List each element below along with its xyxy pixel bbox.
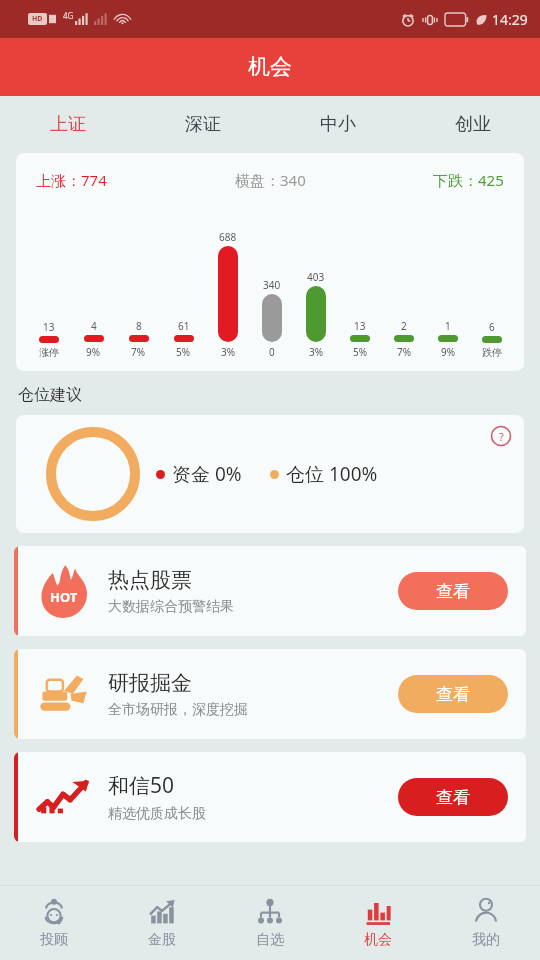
staticText: 9% (441, 345, 456, 359)
staticText: 和信50 (108, 771, 175, 800)
staticText: 5% (176, 345, 191, 359)
button[interactable]: 帮助 (490, 425, 512, 447)
staticText: 涨停 (39, 346, 59, 359)
staticText: 仓位建议 (18, 385, 82, 405)
staticText: 机会 (364, 931, 392, 949)
button[interactable]: 投顾 (0, 886, 108, 960)
staticText: 金股 (148, 931, 176, 949)
staticText: 340 (263, 278, 281, 292)
button[interactable]: 查看 (398, 572, 508, 610)
staticText: 8 (136, 319, 142, 333)
staticText: 我的 (472, 931, 500, 949)
button[interactable]: 上涨：774 (16, 153, 524, 371)
button[interactable]: 深证 (135, 96, 270, 153)
staticText: 下跌：425 (433, 170, 504, 190)
staticText: 上涨：774 (36, 170, 107, 190)
button[interactable]: 上证 (0, 96, 135, 153)
staticText: 资金 0% (172, 461, 242, 487)
staticText: 4 (91, 319, 97, 333)
staticText: 14:29 (492, 10, 528, 29)
staticText: 中小 (320, 113, 356, 136)
staticText: 机会 (248, 53, 292, 81)
staticText: 查看 (436, 581, 470, 602)
staticText: 精选优质成长股 (108, 805, 206, 823)
staticText: ? (499, 429, 504, 444)
staticText: 跌停 (482, 346, 502, 359)
staticText: 横盘：340 (235, 170, 306, 190)
staticText: 上证 (50, 113, 86, 136)
staticText: 热点股票 (108, 567, 192, 593)
staticText: 13 (354, 319, 366, 333)
staticText: 3% (309, 345, 324, 359)
staticText: 仓位 100% (286, 461, 378, 487)
button[interactable]: 自选 (216, 886, 324, 960)
button[interactable]: 机会 (324, 886, 432, 960)
button[interactable]: 和信50 (14, 752, 526, 842)
button[interactable]: 金股 (108, 886, 216, 960)
staticText: HD (32, 14, 43, 24)
staticText: 大数据综合预警结果 (108, 598, 234, 616)
staticText: 61 (178, 319, 190, 333)
staticText: 深证 (185, 113, 221, 136)
staticText: 1 (445, 319, 451, 333)
staticText: 查看 (436, 787, 470, 808)
staticText: 自选 (256, 931, 284, 949)
staticText: 7% (397, 345, 412, 359)
button[interactable]: 资金 0% (16, 415, 524, 533)
staticText: 研报掘金 (108, 670, 192, 696)
button[interactable]: 我的 (432, 886, 540, 960)
staticText: 403 (307, 270, 325, 284)
button[interactable]: 创业 (405, 96, 540, 153)
staticText: 688 (219, 230, 237, 244)
button[interactable]: 查看 (398, 778, 508, 816)
staticText: 5% (353, 345, 368, 359)
button[interactable]: 中小 (270, 96, 405, 153)
staticText: 0 (269, 345, 275, 359)
staticText: 创业 (455, 113, 491, 136)
button[interactable]: HOT (14, 546, 526, 636)
staticText: HOT (50, 588, 78, 606)
staticText: 3% (221, 345, 236, 359)
staticText: 2 (401, 319, 407, 333)
button[interactable]: 研报掘金 (14, 649, 526, 739)
button[interactable]: 查看 (398, 675, 508, 713)
staticText: 7% (131, 345, 146, 359)
staticText: 全市场研报，深度挖掘 (108, 701, 248, 719)
staticText: 4G (63, 10, 74, 21)
staticText: 13 (43, 320, 55, 334)
staticText: 6 (489, 320, 495, 334)
staticText: 9% (86, 345, 101, 359)
staticText: 投顾 (40, 931, 68, 949)
staticText: 查看 (436, 684, 470, 705)
